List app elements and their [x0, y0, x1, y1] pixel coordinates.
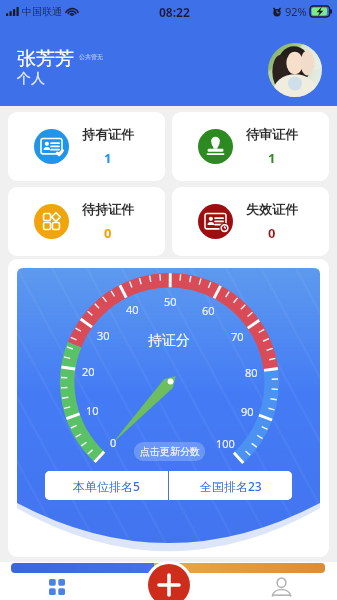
staticText: 0 [268, 224, 276, 242]
staticText: 1 [268, 149, 276, 167]
staticText: 30 [97, 328, 110, 343]
staticText: 失效证件 [246, 201, 298, 217]
staticText: 点击更新分数 [140, 445, 200, 458]
button[interactable]: 待持证件 [8, 187, 165, 256]
staticText: 10 [86, 403, 99, 418]
staticText: 个人 [17, 70, 45, 88]
button[interactable]: 待审证件 [172, 112, 329, 181]
staticText: 100 [216, 436, 235, 451]
button[interactable]: 持有证件 [8, 112, 165, 181]
staticText: 0 [110, 435, 117, 450]
staticText: 持证分 [148, 332, 190, 350]
staticText: 20 [82, 364, 95, 379]
button[interactable]: 点击更新分数 [134, 442, 205, 461]
button[interactable]: 全国排名23 [169, 471, 292, 500]
staticText: 全国排名23 [200, 478, 262, 494]
staticText: 中国联通 [22, 5, 62, 18]
staticText: 持有证件 [82, 126, 134, 142]
staticText: 40 [126, 302, 139, 317]
staticText: 50 [164, 294, 177, 309]
button[interactable]: 本单位排名5 [45, 471, 168, 500]
staticText: 0 [104, 224, 112, 242]
button[interactable]: Add [148, 564, 190, 600]
button[interactable]: Profile photo [268, 43, 322, 97]
staticText: 08:22 [159, 4, 190, 20]
button[interactable]: 失效证件 [172, 187, 329, 256]
button[interactable]: Profile [225, 574, 337, 600]
staticText: 待审证件 [246, 126, 298, 142]
staticText: 1 [104, 149, 112, 167]
staticText: 公共管无 [79, 53, 103, 61]
staticText: 70 [231, 329, 244, 344]
staticText: 本单位排名5 [73, 478, 140, 494]
staticText: 90 [241, 404, 254, 419]
staticText: 张芳芳 [17, 47, 74, 71]
staticText: 92% [285, 4, 307, 19]
staticText: 待持证件 [82, 201, 134, 217]
staticText: 60 [202, 303, 215, 318]
button[interactable]: Home [0, 574, 113, 600]
staticText: 80 [245, 365, 258, 380]
